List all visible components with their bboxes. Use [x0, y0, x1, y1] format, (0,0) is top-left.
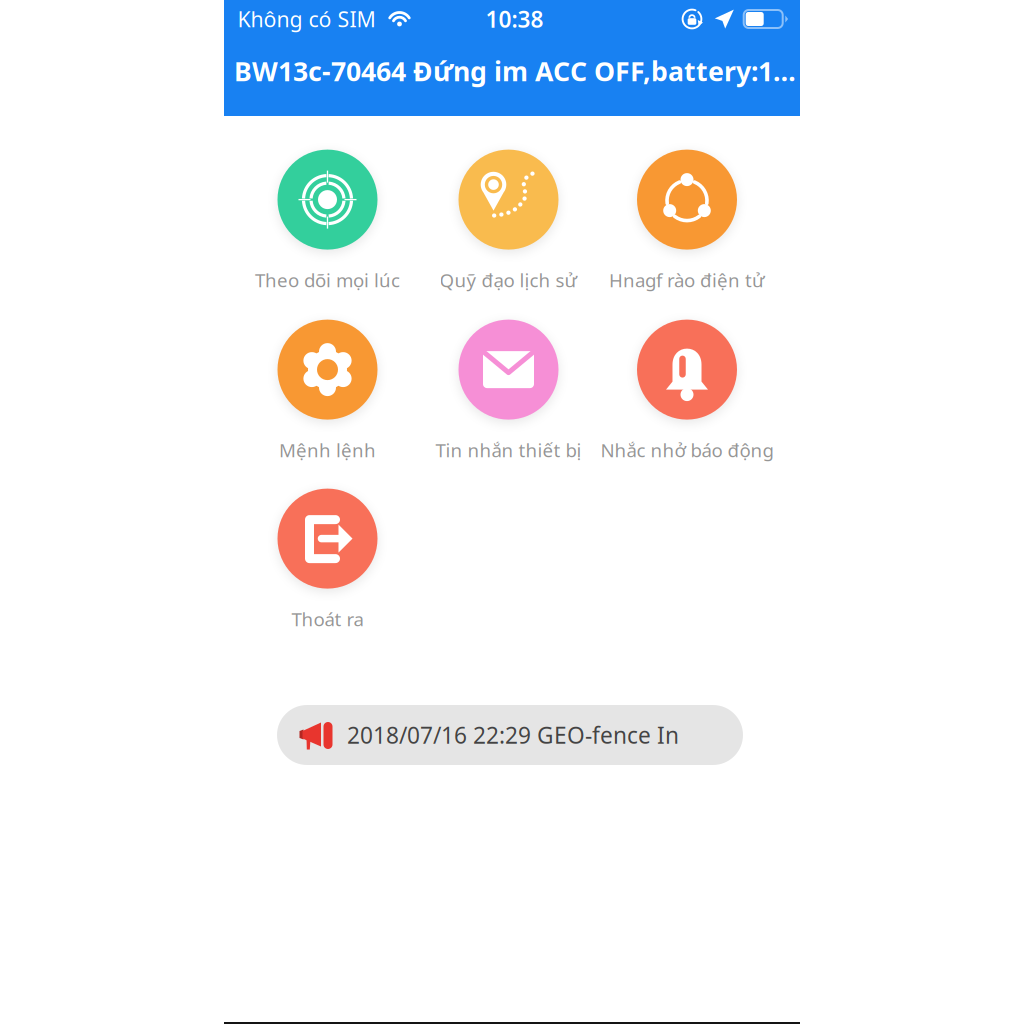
staticText: Mệnh lệnh	[279, 438, 376, 462]
staticText: 2018/07/16 22:29 GEO-fence In	[347, 720, 679, 750]
button[interactable]: Tin nhắn thiết bị	[418, 321, 598, 461]
staticText: Hnagf rào điện tử	[609, 268, 765, 292]
staticText: Không có SIM	[237, 5, 375, 33]
staticText: Theo dõi mọi lúc	[255, 268, 400, 292]
staticText: BW13c-70464 Đứng im ACC OFF,battery:1…	[234, 53, 796, 89]
staticText: Quỹ đạo lịch sử	[439, 268, 577, 292]
button[interactable]: Theo dõi mọi lúc	[237, 151, 417, 291]
button[interactable]: 2018/07/16 22:29 GEO-fence In	[277, 705, 743, 765]
staticText: Nhắc nhở báo động	[600, 438, 773, 462]
button[interactable]: Thoát ra	[237, 490, 417, 630]
staticText: 10:38	[485, 4, 543, 34]
button[interactable]: Hnagf rào điện tử	[597, 151, 777, 291]
button[interactable]: Mệnh lệnh	[237, 321, 417, 461]
button[interactable]: Quỹ đạo lịch sử	[418, 151, 598, 291]
staticText: Tin nhắn thiết bị	[435, 438, 581, 462]
button[interactable]: Nhắc nhở báo động	[597, 321, 777, 461]
staticText: Thoát ra	[291, 607, 363, 631]
